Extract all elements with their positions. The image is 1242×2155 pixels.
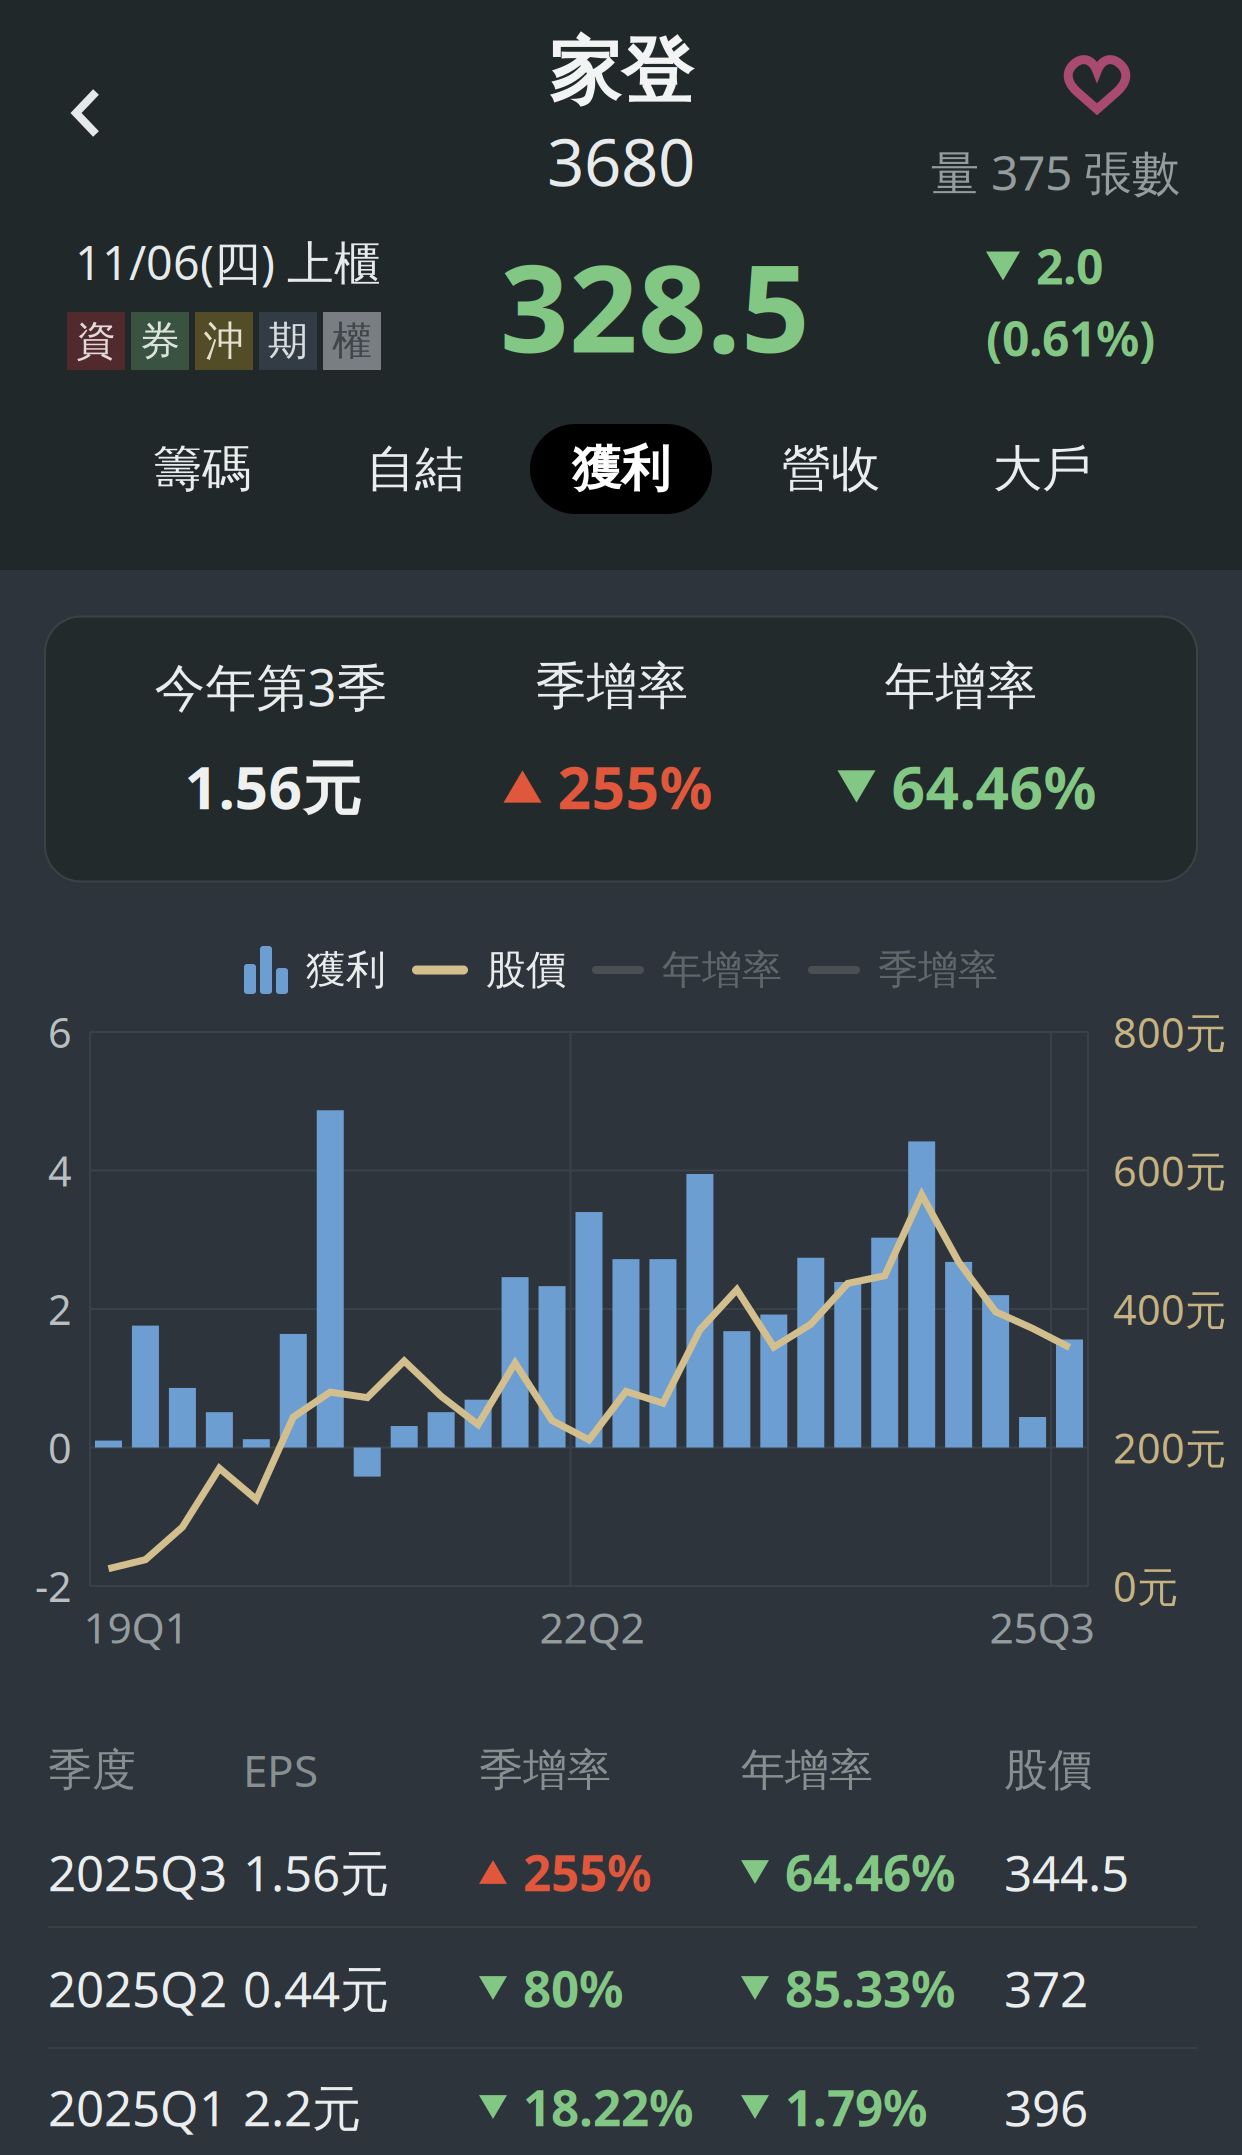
staticText: 344.5 bbox=[1004, 1839, 1129, 1905]
staticText: 股價 bbox=[486, 945, 566, 994]
staticText: 64.46% bbox=[891, 747, 1096, 825]
staticText: 328.5 bbox=[500, 226, 810, 386]
staticText: 季增率 bbox=[535, 655, 688, 718]
staticText: 獲利 bbox=[306, 945, 386, 994]
staticText: 0 bbox=[48, 1420, 72, 1475]
staticText: 1.56元 bbox=[184, 747, 361, 825]
staticText: 1.79% bbox=[785, 2074, 927, 2140]
staticText: 11/06(四) 上櫃 bbox=[75, 231, 381, 293]
staticText: 季增率 bbox=[878, 945, 998, 994]
staticText: 6 bbox=[48, 1005, 72, 1059]
staticText: 255% bbox=[523, 1839, 651, 1905]
staticText: 396 bbox=[1004, 2074, 1088, 2140]
staticText: 25Q3 bbox=[989, 1599, 1094, 1655]
staticText: 80% bbox=[523, 1955, 623, 2021]
button[interactable]: 籌碼 bbox=[122, 424, 282, 514]
staticText: 400元 bbox=[1113, 1282, 1226, 1336]
staticText: 2 bbox=[48, 1282, 72, 1336]
staticText: 255% bbox=[557, 747, 712, 825]
staticText: 季增率 bbox=[479, 1743, 611, 1797]
staticText: 期 bbox=[268, 316, 308, 365]
staticText: 2025Q3 bbox=[48, 1839, 227, 1905]
button[interactable]: 自結 bbox=[335, 424, 495, 514]
staticText: 年增率 bbox=[884, 655, 1037, 718]
staticText: -2 bbox=[35, 1559, 72, 1613]
staticText: 4 bbox=[48, 1143, 72, 1198]
staticText: 2.2元 bbox=[243, 2074, 361, 2140]
staticText: 自結 bbox=[366, 439, 464, 499]
staticText: 200元 bbox=[1113, 1420, 1226, 1475]
staticText: 2025Q1 bbox=[48, 2074, 227, 2140]
button[interactable]: 獲利 bbox=[530, 424, 712, 514]
staticText: 年增率 bbox=[662, 945, 782, 994]
staticText: 2025Q2 bbox=[48, 1955, 227, 2021]
staticText: 家登 bbox=[549, 28, 693, 116]
staticText: 股價 bbox=[1004, 1743, 1092, 1797]
button[interactable]: 返回 bbox=[42, 69, 130, 157]
staticText: 64.46% bbox=[785, 1839, 955, 1905]
staticText: 年增率 bbox=[741, 1743, 873, 1797]
staticText: 22Q2 bbox=[539, 1599, 644, 1655]
staticText: 今年第3季 bbox=[154, 653, 387, 720]
staticText: EPS bbox=[243, 1741, 318, 1799]
staticText: 量 375 張數 bbox=[931, 140, 1180, 204]
staticText: 營收 bbox=[782, 439, 880, 499]
button[interactable]: 大戶 bbox=[962, 424, 1122, 514]
staticText: 權 bbox=[332, 316, 372, 365]
staticText: 372 bbox=[1004, 1955, 1088, 2021]
staticText: 18.22% bbox=[523, 2074, 693, 2140]
staticText: 券 bbox=[140, 316, 180, 365]
staticText: 資 bbox=[76, 316, 116, 365]
staticText: 沖 bbox=[204, 316, 244, 365]
button[interactable]: 營收 bbox=[751, 424, 911, 514]
staticText: 19Q1 bbox=[83, 1599, 188, 1655]
staticText: 800元 bbox=[1113, 1005, 1226, 1059]
staticText: 85.33% bbox=[785, 1955, 955, 2021]
staticText: 1.56元 bbox=[243, 1839, 389, 1905]
staticText: 0元 bbox=[1113, 1559, 1178, 1613]
staticText: 3680 bbox=[547, 118, 695, 204]
staticText: 2.0 bbox=[1036, 234, 1103, 298]
staticText: 季度 bbox=[48, 1743, 136, 1797]
staticText: (0.61%) bbox=[986, 306, 1155, 370]
staticText: 獲利 bbox=[572, 439, 670, 499]
staticText: 0.44元 bbox=[243, 1955, 389, 2021]
staticText: 600元 bbox=[1113, 1143, 1226, 1198]
button[interactable]: 加入自選 bbox=[1066, 57, 1127, 112]
staticText: 籌碼 bbox=[153, 439, 251, 499]
staticText: 大戶 bbox=[993, 439, 1091, 499]
